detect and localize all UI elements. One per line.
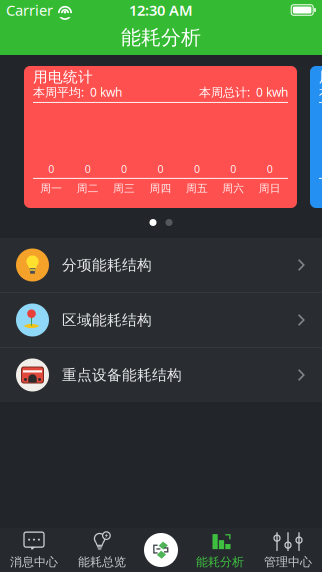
staticText: 能耗分析 <box>121 25 201 50</box>
button[interactable]: 消息中心 <box>0 528 68 572</box>
staticText: 用水统计 <box>319 68 322 86</box>
staticText: 用电统计 <box>33 68 93 86</box>
staticText: 本周平均: 0 kwh <box>33 84 122 100</box>
staticText: 周三 <box>113 182 135 195</box>
staticText: 0 <box>230 162 236 176</box>
staticText: 周二 <box>77 182 99 195</box>
staticText: 消息中心 <box>10 555 58 569</box>
staticText: 0 <box>48 162 54 176</box>
staticText: 0 <box>267 162 273 176</box>
button[interactable]: 分项能耗结构 <box>0 238 322 293</box>
staticText: 0 <box>121 162 127 176</box>
button[interactable]: 重点设备能耗结构 <box>0 348 322 402</box>
staticText: 周六 <box>222 182 244 195</box>
button[interactable]: 区域能耗结构 <box>0 293 322 348</box>
staticText: 能耗总览 <box>78 555 126 569</box>
staticText: 0 <box>157 162 163 176</box>
staticText: 周四 <box>149 182 171 195</box>
staticText: 区域能耗结构 <box>62 311 152 329</box>
staticText: 本周总计: 0 kwh <box>199 84 288 100</box>
staticText: 本周平均: 0 t <box>319 84 322 100</box>
staticText: 分项能耗结构 <box>62 256 152 274</box>
staticText: 0 <box>85 162 91 176</box>
staticText: 周日 <box>259 182 281 195</box>
staticText: 0 <box>194 162 200 176</box>
staticText: 12:30 AM <box>129 0 193 20</box>
staticText: 周一 <box>40 182 62 195</box>
staticText: 能耗分析 <box>196 555 244 569</box>
button[interactable]: 能耗总览 <box>68 528 136 572</box>
button[interactable]: 扫一扫 <box>141 530 181 570</box>
button[interactable]: 能耗分析 <box>186 528 254 572</box>
staticText: 周五 <box>186 182 208 195</box>
staticText: Carrier <box>6 0 53 20</box>
button[interactable]: 管理中心 <box>254 528 322 572</box>
staticText: 重点设备能耗结构 <box>62 366 182 384</box>
staticText: 管理中心 <box>264 555 312 569</box>
